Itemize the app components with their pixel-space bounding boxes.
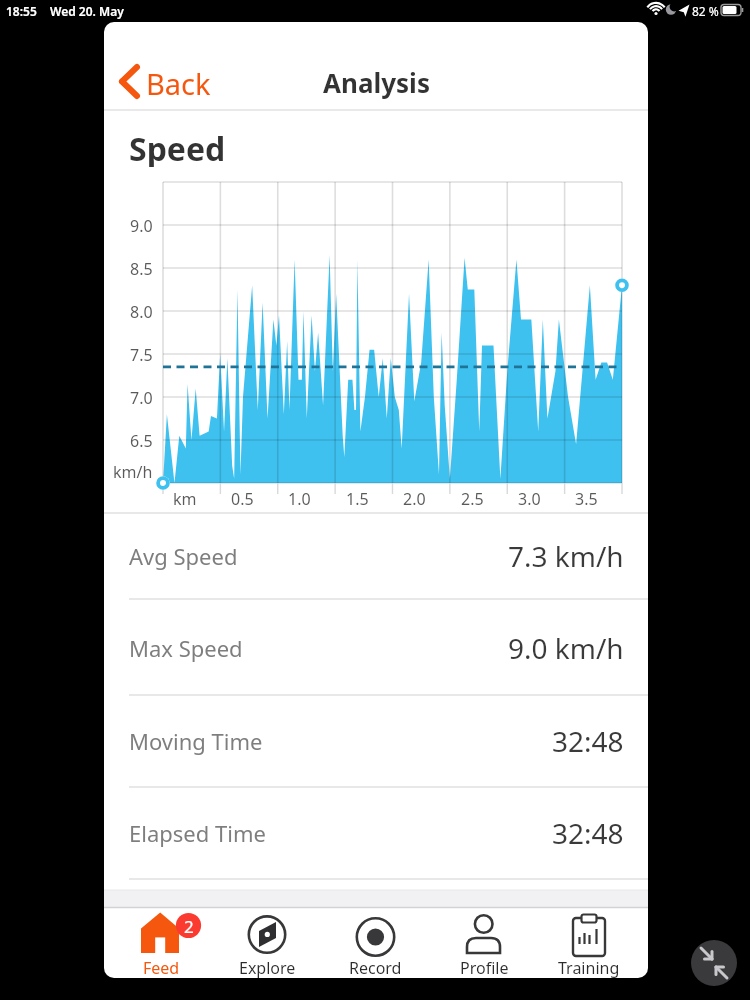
staticText: 2.5 [461,488,484,508]
staticText: 3.0 [518,488,541,508]
staticText: Avg Speed [129,541,238,571]
staticText: Elapsed Time [129,818,266,848]
button[interactable] [114,60,214,104]
staticText: 1.0 [288,488,311,508]
staticText: 8.0 [130,301,153,321]
button[interactable] [104,514,648,599]
staticText: 7.3 km/h [508,537,624,575]
staticText: 9.0 [130,215,153,235]
staticText: 6.5 [130,430,153,450]
staticText: Record [349,957,402,978]
staticText: Moving Time [129,726,263,756]
staticText: 32:48 [552,722,624,760]
button[interactable] [539,908,639,978]
button[interactable] [111,908,211,978]
staticText: Profile [460,957,509,978]
staticText: 2 [184,915,194,938]
staticText: 18:55 [6,3,37,19]
button[interactable] [691,940,737,986]
staticText: 3.5 [575,488,598,508]
staticText: Wed 20. May [50,3,124,19]
staticText: 32:48 [552,814,624,852]
staticText: 0.5 [231,488,254,508]
staticText: 8.5 [130,258,153,278]
staticText: Max Speed [129,633,243,663]
button[interactable] [217,908,317,978]
button[interactable] [325,908,425,978]
staticText: 2.0 [403,488,426,508]
button[interactable] [104,788,648,879]
button[interactable] [104,600,648,695]
staticText: 82 % [692,3,719,19]
staticText: Training [558,957,620,978]
staticText: km/h [113,461,153,481]
staticText: Explore [239,957,296,978]
staticText: 1.5 [346,488,369,508]
staticText: Analysis [323,65,430,100]
staticText: Back [146,64,211,100]
staticText: 7.0 [130,387,153,407]
staticText: Feed [143,957,180,978]
staticText: km [173,488,197,508]
button[interactable] [434,908,534,978]
button[interactable] [104,696,648,787]
staticText: 7.5 [130,344,153,364]
staticText: 9.0 km/h [508,629,624,667]
staticText: Speed [129,127,226,167]
